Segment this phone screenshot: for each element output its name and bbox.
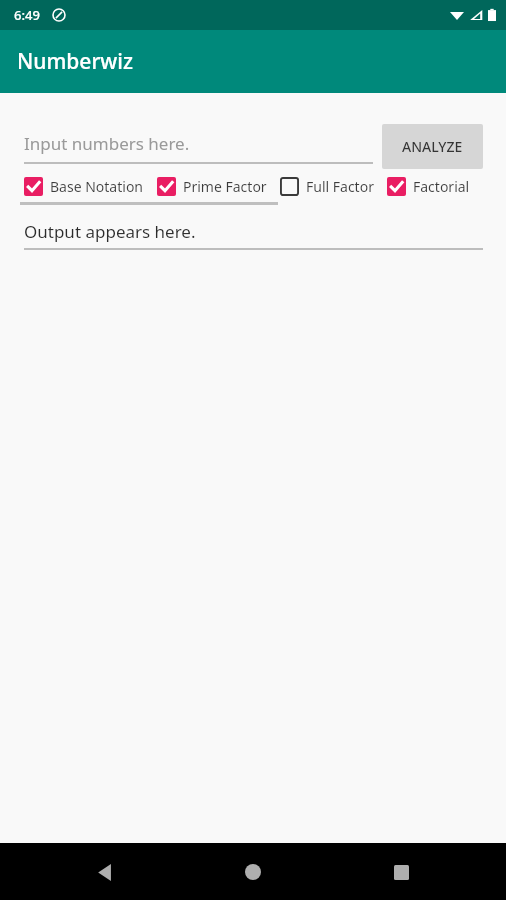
- button[interactable]: Base Notation: [24, 177, 146, 196]
- button[interactable]: Recents: [380, 851, 422, 893]
- button[interactable]: Factorial: [387, 177, 472, 196]
- button[interactable]: Prime Factor: [157, 177, 269, 196]
- button[interactable]: Back: [84, 851, 126, 893]
- button[interactable]: ANALYZE: [382, 124, 483, 169]
- staticText: 6:49: [14, 6, 40, 24]
- staticText: Base Notation: [50, 177, 144, 196]
- button[interactable]: Full Factor: [280, 177, 376, 196]
- staticText: Full Factor: [306, 177, 374, 196]
- button[interactable]: Home: [232, 851, 274, 893]
- button[interactable]: Output appears here.: [24, 215, 483, 250]
- staticText: Input numbers here.: [24, 132, 190, 155]
- staticText: ANALYZE: [402, 137, 463, 156]
- staticText: Output appears here.: [24, 220, 196, 243]
- staticText: Factorial: [413, 177, 470, 196]
- staticText: Numberwiz: [17, 47, 133, 76]
- button[interactable]: Input numbers here.: [24, 124, 373, 164]
- staticText: Prime Factor: [183, 177, 267, 196]
